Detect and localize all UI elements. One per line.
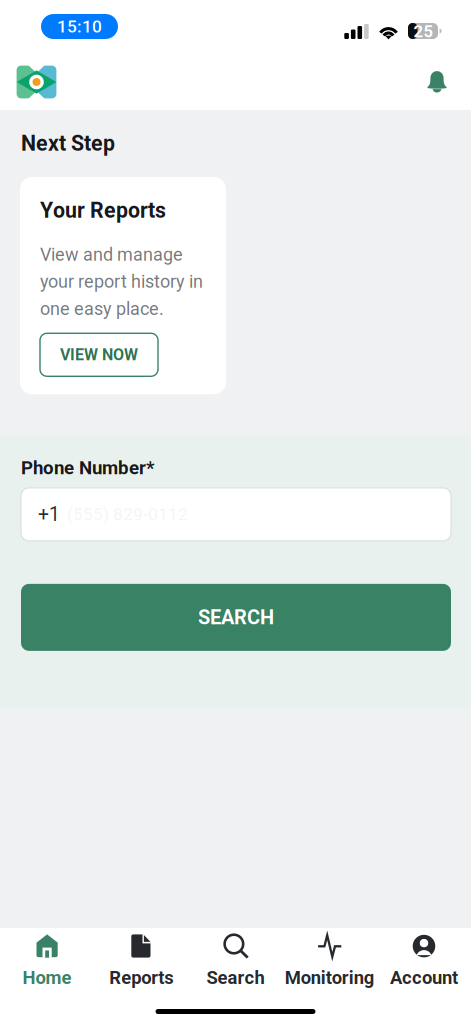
staticText: Monitoring: [285, 967, 375, 989]
button[interactable]: Home: [0, 934, 94, 989]
button[interactable]: SEARCH: [21, 584, 451, 651]
button[interactable]: Monitoring: [283, 934, 377, 989]
staticText: +1: [38, 503, 60, 526]
button[interactable]: Search: [188, 934, 283, 989]
button[interactable]: VIEW NOW: [40, 333, 158, 376]
staticText: VIEW NOW: [60, 345, 138, 364]
button[interactable]: Notifications: [425, 69, 449, 94]
staticText: SEARCH: [198, 606, 274, 629]
staticText: (555) 829-0112: [67, 504, 188, 524]
staticText: Home: [23, 967, 72, 989]
staticText: Phone Number*: [21, 457, 154, 479]
staticText: 15:10: [57, 16, 102, 37]
staticText: Search: [206, 967, 264, 989]
staticText: Account: [390, 967, 458, 989]
staticText: 25: [413, 22, 433, 41]
staticText: Your Reports: [40, 198, 166, 223]
staticText: View and manage your report history in o…: [40, 244, 203, 319]
staticText: Reports: [109, 967, 173, 989]
button[interactable]: Account: [377, 934, 471, 989]
button[interactable]: Reports: [94, 934, 188, 989]
staticText: Next Step: [21, 131, 115, 156]
